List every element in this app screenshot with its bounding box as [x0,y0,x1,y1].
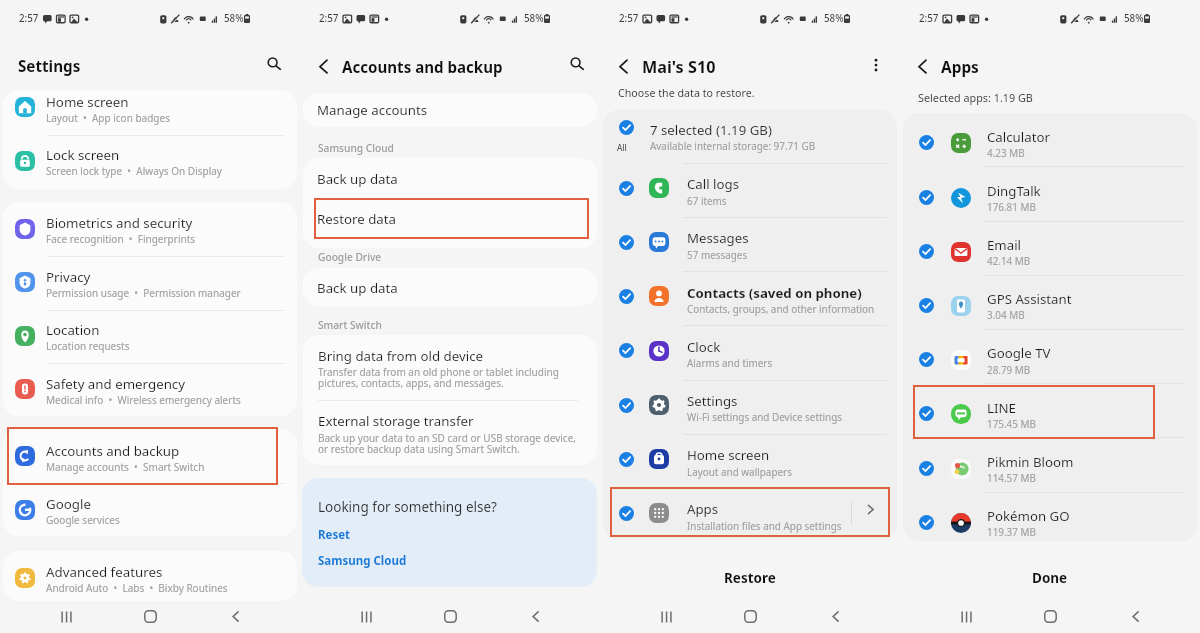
staticText: Settings [687,392,738,410]
staticText: 58% [224,12,244,25]
staticText: Samsung Cloud [318,141,394,155]
staticText: Accounts and backup [46,442,180,460]
staticText: Restore [724,569,776,587]
button[interactable]: Home [730,600,770,633]
button[interactable]: More options [865,54,887,76]
button[interactable]: Back [215,600,255,633]
staticText: Google [46,495,91,513]
button[interactable] [903,493,1197,547]
button[interactable] [603,489,897,543]
button[interactable] [603,110,897,164]
button[interactable] [603,218,897,272]
button[interactable]: Done [900,560,1200,595]
button[interactable] [3,483,297,537]
staticText: 58% [524,12,544,25]
staticText: Back up data [317,279,398,297]
button[interactable] [3,551,297,599]
button[interactable]: Samsung Cloud [318,553,407,569]
button[interactable] [3,135,297,189]
staticText: Mai's S10 [642,56,716,78]
staticText: External storage transfer [318,412,474,430]
staticText: Privacy [46,268,91,286]
button[interactable] [603,164,897,218]
button[interactable] [603,326,897,380]
button[interactable] [903,276,1197,330]
staticText: Looking for something else? [318,498,497,516]
staticText: Settings [18,56,81,77]
button[interactable]: Recents [646,600,686,633]
button[interactable]: Back [909,53,935,79]
button[interactable]: Search [564,51,592,79]
button[interactable] [12,50,92,82]
button[interactable] [3,309,297,363]
button[interactable]: Back [515,600,555,633]
button[interactable] [303,93,597,127]
button[interactable] [903,438,1197,492]
staticText: DingTalk [987,182,1041,200]
button[interactable]: Home [1030,600,1070,633]
button[interactable] [303,400,597,464]
button[interactable]: Search [261,51,289,79]
staticText: Face recognition • Fingerprints [46,232,196,246]
staticText: GPS Assistant [987,290,1072,308]
button[interactable] [603,272,897,326]
button[interactable]: Back [310,53,336,79]
button[interactable]: Recents [46,600,86,633]
button[interactable] [603,435,897,489]
button[interactable]: Back [1115,600,1155,633]
staticText: Transfer data from an old phone or table… [318,365,559,390]
button[interactable] [3,90,297,135]
button[interactable]: Home [130,600,170,633]
staticText: Installation files and App settings [687,519,842,532]
button[interactable] [903,384,1197,438]
button[interactable] [3,256,297,310]
staticText: Restore data [317,210,397,228]
button[interactable] [903,167,1197,221]
staticText: Accounts and backup [342,57,503,78]
staticText: Medical info • Wireless emergency alerts [46,393,241,407]
staticText: Choose the data to restore. [618,86,755,101]
button[interactable] [903,113,1197,167]
button[interactable] [903,330,1197,384]
staticText: Alarms and timers [687,356,773,369]
button[interactable]: Recents [946,600,986,633]
staticText: 3.04 MB [987,308,1025,321]
button[interactable]: Reset [318,527,351,543]
staticText: 58% [1124,12,1144,25]
staticText: Samsung Cloud [318,553,407,569]
button[interactable]: Back [815,600,855,633]
button[interactable]: Back [610,53,636,79]
button[interactable]: Home [430,600,470,633]
staticText: Manage accounts [317,101,428,119]
staticText: Calculator [987,128,1050,146]
button[interactable] [303,268,597,306]
button[interactable] [303,335,597,400]
staticText: Contacts, groups, and other information [687,302,875,315]
staticText: Available internal storage: 97.71 GB [650,139,816,152]
staticText: 57 messages [687,248,748,261]
staticText: Clock [687,338,721,356]
button[interactable] [3,363,297,417]
staticText: 2:57 [319,12,339,25]
staticText: Contacts (saved on phone) [687,284,862,302]
button[interactable] [303,158,597,198]
staticText: 2:57 [619,12,639,25]
button[interactable]: Restore [600,560,900,595]
button[interactable] [3,202,297,256]
staticText: Messages [687,229,749,247]
staticText: Screen lock type • Always On Display [46,164,222,178]
button[interactable] [3,429,297,483]
staticText: Email [987,236,1022,254]
staticText: 67 items [687,194,727,207]
staticText: Home screen [46,93,129,111]
staticText: Reset [318,527,351,543]
staticText: LINE [987,399,1016,417]
button[interactable] [303,198,597,238]
staticText: Advanced features [46,563,163,581]
button[interactable] [603,381,897,435]
button[interactable]: Recents [346,600,386,633]
staticText: Done [1032,569,1068,587]
staticText: Safety and emergency [46,375,186,393]
button[interactable] [903,222,1197,276]
staticText: Pokémon GO [987,507,1070,525]
